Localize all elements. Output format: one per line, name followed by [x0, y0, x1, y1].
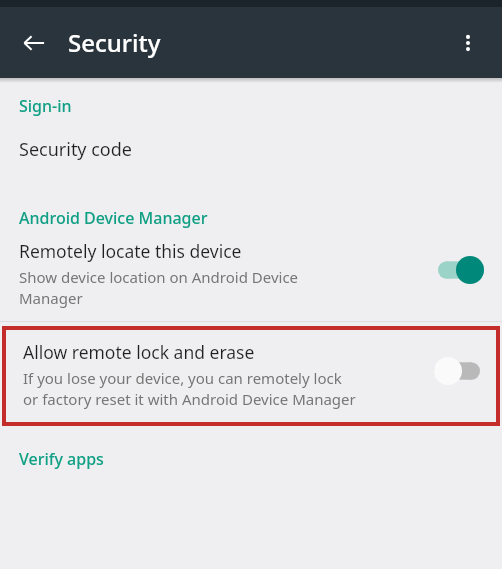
staticText: Verify apps [19, 448, 104, 470]
button[interactable]: Allow remote lock and erase [4, 328, 498, 424]
staticText: Allow remote lock and erase [23, 340, 255, 364]
staticText: Security code [19, 137, 132, 162]
staticText: Android Device Manager [19, 207, 208, 229]
button[interactable]: Security code [0, 117, 502, 181]
staticText: Sign-in [19, 95, 72, 117]
button[interactable]: Back [10, 19, 58, 67]
button[interactable]: More options [444, 19, 492, 67]
staticText: Security [68, 26, 161, 59]
button[interactable]: Remotely locate this device toggle [434, 253, 488, 287]
staticText: Show device location on Android Device M… [19, 267, 299, 309]
staticText: Remotely locate this device [19, 239, 242, 263]
button[interactable]: Allow remote lock and erase toggle [430, 354, 484, 388]
button[interactable]: Remotely locate this device [0, 229, 502, 321]
staticText: If you lose your device, you can remotel… [23, 368, 356, 410]
